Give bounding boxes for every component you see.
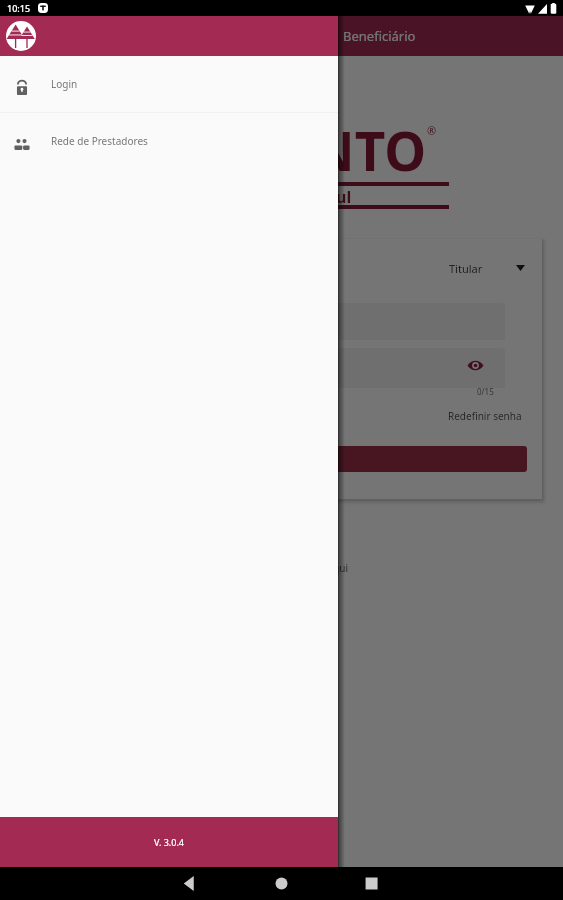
staticText: Rede de Prestadores bbox=[51, 134, 148, 148]
staticText: Login bbox=[51, 77, 78, 91]
button[interactable]: Mostrar senha bbox=[467, 359, 484, 372]
button[interactable]: V. 3.0.4 bbox=[0, 817, 338, 867]
staticText: ® bbox=[427, 123, 437, 138]
staticText: Beneficiário bbox=[343, 27, 416, 45]
button[interactable]: Logotipo bbox=[6, 21, 36, 51]
button[interactable]: Rede de Prestadores bbox=[0, 113, 338, 169]
button[interactable]: Titular bbox=[37, 261, 527, 276]
staticText: Plano de Saúde Sul bbox=[202, 186, 352, 205]
staticText: PAVIMENTO bbox=[112, 114, 427, 186]
button[interactable]: Primeiro acesso? Clique aqui bbox=[214, 561, 349, 575]
staticText: 10:15 bbox=[7, 2, 31, 14]
button[interactable]: Login bbox=[0, 56, 338, 112]
button[interactable]: ENTRAR bbox=[37, 446, 527, 472]
button[interactable]: Redefinir senha bbox=[448, 409, 522, 423]
staticText: V. 3.0.4 bbox=[154, 836, 184, 848]
staticText: Titular bbox=[449, 261, 483, 276]
staticText: 0/15 bbox=[477, 386, 494, 397]
